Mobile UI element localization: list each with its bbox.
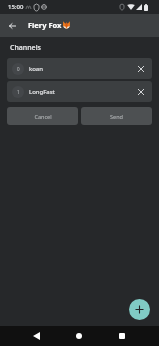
staticText: Send	[110, 113, 123, 120]
button[interactable]: Clear	[133, 61, 149, 77]
button[interactable]: Recents	[112, 326, 132, 346]
button[interactable]: Home	[69, 326, 89, 346]
button[interactable]: 0	[7, 58, 152, 79]
button[interactable]: Cancel	[7, 107, 78, 125]
staticText: 0	[17, 66, 20, 72]
button[interactable]: Clear	[133, 84, 149, 100]
staticText: Cancel	[34, 113, 52, 120]
button[interactable]: Add	[129, 299, 150, 320]
button[interactable]: Back	[2, 16, 22, 36]
staticText: koan	[29, 65, 43, 73]
staticText: 15:00	[8, 3, 24, 11]
staticText: Fiery Fox	[28, 20, 62, 30]
button[interactable]: Back	[26, 326, 46, 346]
staticText: 1	[17, 89, 20, 95]
staticText: LongFast	[29, 88, 55, 96]
button[interactable]: 1	[7, 81, 152, 102]
button[interactable]: Send	[81, 107, 152, 125]
staticText: Channels	[10, 43, 41, 53]
